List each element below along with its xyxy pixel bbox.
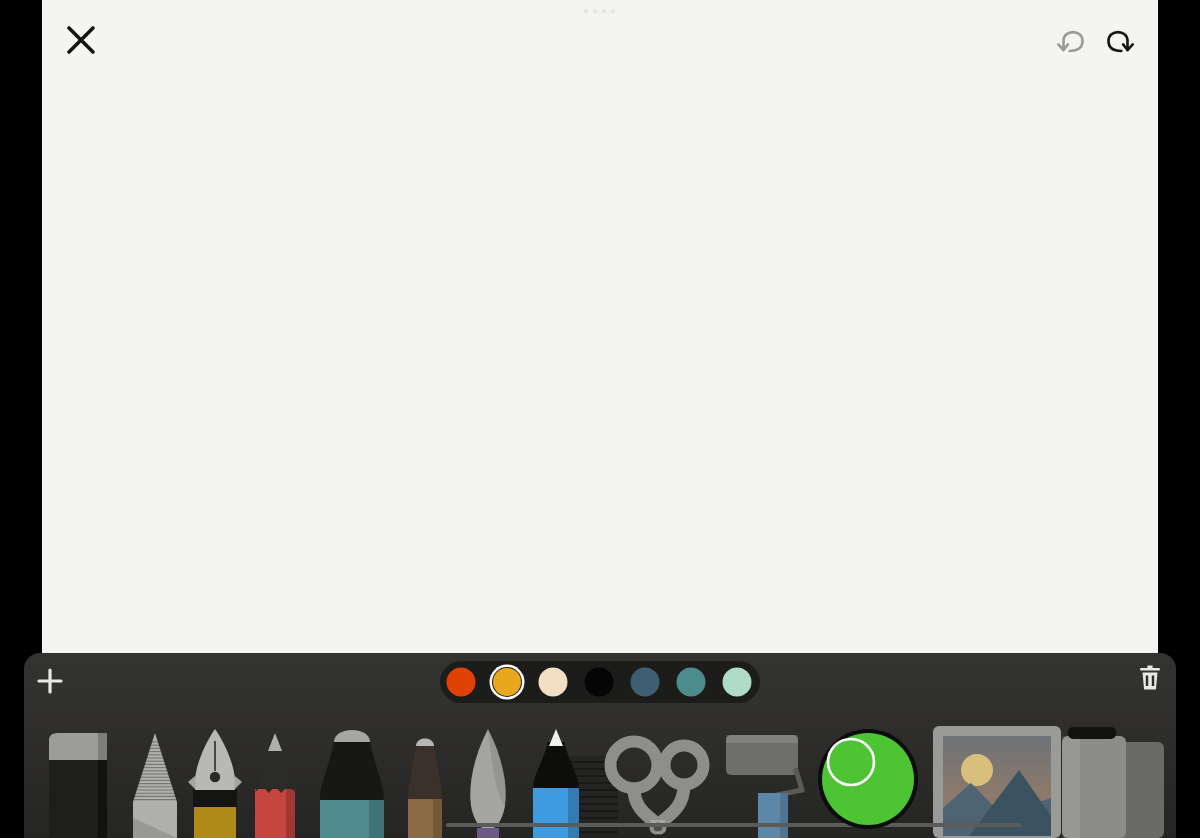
button[interactable]: Coloured pencil: [241, 711, 309, 838]
button[interactable]: Colour 5: [624, 661, 666, 703]
button[interactable]: Undo: [1052, 19, 1094, 61]
button[interactable]: Colour 3: [532, 661, 574, 703]
button[interactable]: Redo: [1097, 19, 1139, 61]
button[interactable]: Brush size and colour: [818, 729, 918, 829]
button[interactable]: Close: [58, 17, 104, 63]
button[interactable]: Add: [28, 659, 72, 703]
button[interactable]: Colour 6: [670, 661, 712, 703]
button[interactable]: Paper roll: [1076, 711, 1144, 838]
button[interactable]: Delete: [1128, 659, 1172, 703]
button[interactable]: Colour 7: [716, 661, 758, 703]
button[interactable]: Teal marker: [318, 711, 386, 838]
button[interactable]: Graphite pencil: [121, 711, 189, 838]
button[interactable]: Colour 2: [486, 661, 528, 703]
button[interactable]: Colour 1: [440, 661, 482, 703]
button[interactable]: Insert image: [963, 711, 1031, 838]
button[interactable]: Blue pen: [522, 711, 590, 838]
button[interactable]: Palette knife: [454, 711, 522, 838]
button[interactable]: Paint roller: [728, 711, 796, 838]
button[interactable]: Scissors: [624, 711, 692, 838]
button[interactable]: Fountain pen: [181, 711, 249, 838]
button[interactable]: Colour 4: [578, 661, 620, 703]
button[interactable]: Eraser: [44, 711, 112, 838]
button[interactable]: Brown marker: [391, 711, 459, 838]
